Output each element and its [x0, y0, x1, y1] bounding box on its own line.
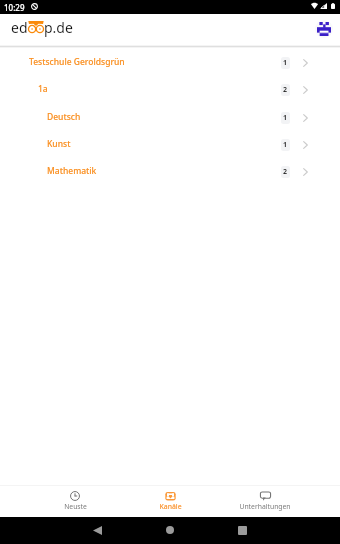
- button[interactable]: Mathematik: [0, 158, 340, 185]
- staticText: Testschule Geroldsgrün: [29, 56, 125, 68]
- staticText: Kanäle: [159, 502, 182, 511]
- staticText: 1a: [38, 83, 48, 95]
- staticText: Unterhaltungen: [239, 502, 291, 511]
- button[interactable]: Kunst: [0, 131, 340, 158]
- button[interactable]: Deutsch: [0, 104, 340, 131]
- button[interactable]: Testschule Geroldsgrün: [0, 49, 340, 76]
- button[interactable]: Kanäle: [123, 486, 217, 517]
- staticText: 2: [283, 85, 288, 95]
- button[interactable]: Neuste: [28, 486, 122, 517]
- other: Home: [166, 526, 174, 534]
- staticText: ed: [11, 18, 28, 37]
- staticText: Neuste: [64, 502, 87, 511]
- button[interactable]: Account: [306, 13, 340, 44]
- other: Recents: [238, 526, 247, 535]
- other: Back: [93, 526, 102, 535]
- staticText: 1: [283, 140, 288, 150]
- staticText: 2: [283, 167, 288, 177]
- staticText: Kunst: [47, 138, 71, 150]
- staticText: 1: [283, 113, 288, 123]
- button[interactable]: Unterhaltungen: [218, 486, 312, 517]
- button[interactable]: 1a: [0, 76, 340, 103]
- staticText: Deutsch: [47, 111, 81, 123]
- staticText: 1: [283, 58, 288, 68]
- staticText: Mathematik: [47, 165, 97, 177]
- staticText: 10:29: [4, 2, 25, 13]
- staticText: p.de: [44, 18, 73, 37]
